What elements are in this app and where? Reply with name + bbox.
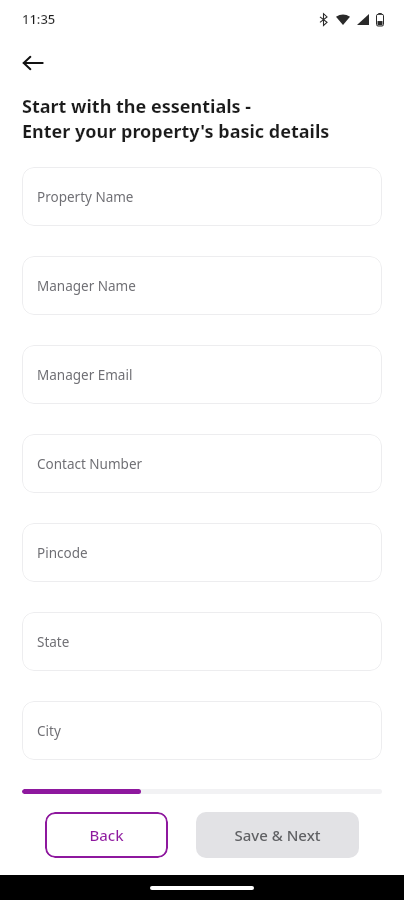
- staticText: State: [37, 633, 70, 651]
- button[interactable]: Manager Name: [22, 256, 382, 315]
- staticText: Property Name: [37, 188, 134, 206]
- staticText: Enter your property's basic details: [22, 119, 330, 144]
- staticText: Back: [89, 825, 124, 845]
- button[interactable]: Contact Number: [22, 434, 382, 493]
- staticText: Start with the essentials -: [22, 94, 252, 119]
- staticText: Save & Next: [234, 825, 321, 845]
- staticText: Pincode: [37, 544, 88, 562]
- button[interactable]: City: [22, 701, 382, 760]
- staticText: Contact Number: [37, 455, 143, 473]
- button[interactable]: Save & Next: [196, 812, 359, 858]
- button[interactable]: Back: [45, 812, 168, 858]
- button[interactable]: State: [22, 612, 382, 671]
- staticText: Manager Email: [37, 366, 133, 384]
- staticText: City: [37, 722, 61, 740]
- button[interactable]: Manager Email: [22, 345, 382, 404]
- button[interactable]: Back: [14, 44, 52, 82]
- button[interactable]: Property Name: [22, 167, 382, 226]
- staticText: 11:35: [22, 10, 56, 28]
- staticText: Manager Name: [37, 277, 136, 295]
- button[interactable]: Pincode: [22, 523, 382, 582]
